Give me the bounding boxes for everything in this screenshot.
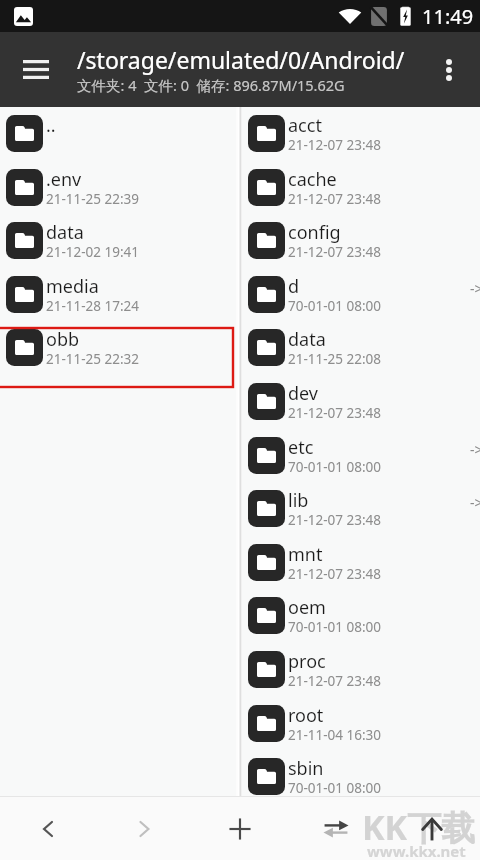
staticText: 21-12-07 23:48 xyxy=(288,243,382,261)
staticText: .. xyxy=(46,113,56,138)
button[interactable]: More options xyxy=(421,32,477,107)
staticText: 21-11-25 22:39 xyxy=(46,190,140,208)
button[interactable]: Up xyxy=(384,797,480,860)
staticText: cache xyxy=(288,167,337,192)
button[interactable]: lib xyxy=(242,482,480,536)
staticText: 70-01-01 08:00 xyxy=(288,779,382,797)
button[interactable]: data xyxy=(0,214,236,268)
staticText: -> xyxy=(470,279,480,298)
staticText: 21-12-07 23:48 xyxy=(288,404,382,422)
staticText: /storage/emulated/0/Android/ xyxy=(77,44,405,75)
button[interactable]: dev xyxy=(242,375,480,429)
staticText: 11:49 xyxy=(422,3,474,30)
staticText: 70-01-01 08:00 xyxy=(288,458,382,476)
button[interactable]: Forward xyxy=(96,797,192,860)
button[interactable]: sbin xyxy=(242,750,480,804)
staticText: 21-12-07 23:48 xyxy=(288,672,382,690)
staticText: obb xyxy=(46,327,80,352)
staticText: acct xyxy=(288,113,322,138)
staticText: .env xyxy=(46,167,82,192)
button[interactable]: media xyxy=(0,268,236,322)
staticText: 70-01-01 08:00 xyxy=(288,618,382,636)
button[interactable]: Back xyxy=(0,797,96,860)
staticText: 70-01-01 08:00 xyxy=(288,297,382,315)
staticText: proc xyxy=(288,649,326,674)
staticText: media xyxy=(46,274,99,299)
staticText: 21-11-04 16:30 xyxy=(288,726,382,744)
staticText: -> xyxy=(470,493,480,512)
button[interactable]: root xyxy=(242,697,480,751)
button[interactable]: d xyxy=(242,268,480,322)
button[interactable]: New folder xyxy=(192,797,288,860)
staticText: d xyxy=(288,274,300,299)
button[interactable]: cache xyxy=(242,161,480,215)
staticText: mnt xyxy=(288,542,323,567)
button[interactable]: .env xyxy=(0,161,236,215)
staticText: data xyxy=(288,327,326,352)
staticText: oem xyxy=(288,595,326,620)
staticText: lib xyxy=(288,488,309,513)
staticText: 21-12-07 23:48 xyxy=(288,511,382,529)
staticText: -> xyxy=(470,440,480,459)
button[interactable]: Menu xyxy=(6,32,66,107)
staticText: etc xyxy=(288,435,314,460)
button[interactable]: data xyxy=(242,321,480,375)
staticText: sbin xyxy=(288,756,324,781)
button[interactable]: Transfer xyxy=(288,797,384,860)
staticText: 21-12-07 23:48 xyxy=(288,190,382,208)
staticText: 21-11-28 17:24 xyxy=(46,297,140,315)
staticText: 21-11-25 22:32 xyxy=(46,350,140,368)
button[interactable]: acct xyxy=(242,107,480,161)
staticText: dev xyxy=(288,381,319,406)
staticText: 21-12-07 23:48 xyxy=(288,565,382,583)
staticText: root xyxy=(288,703,324,728)
staticText: 文件夹: 4 文件: 0 储存: 896.87M/15.62G xyxy=(77,75,345,95)
staticText: KK下载 xyxy=(362,804,476,850)
button[interactable]: mnt xyxy=(242,536,480,590)
button[interactable]: proc xyxy=(242,643,480,697)
staticText: www.kkx.net xyxy=(367,841,466,860)
button[interactable]: oem xyxy=(242,589,480,643)
staticText: data xyxy=(46,220,84,245)
button[interactable]: etc xyxy=(242,429,480,483)
button[interactable]: config xyxy=(242,214,480,268)
button[interactable]: obb xyxy=(0,321,236,375)
staticText: 21-12-02 19:41 xyxy=(46,243,140,261)
button[interactable]: .. xyxy=(0,107,236,161)
staticText: 21-12-07 23:48 xyxy=(288,136,382,154)
staticText: config xyxy=(288,220,341,245)
staticText: 21-11-25 22:08 xyxy=(288,350,382,368)
